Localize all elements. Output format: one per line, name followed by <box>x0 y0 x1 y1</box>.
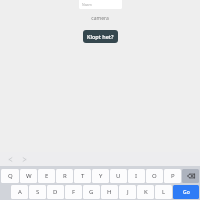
staticText: H <box>107 188 112 196</box>
button[interactable]: P <box>164 169 181 183</box>
button[interactable]: Next field <box>19 154 30 165</box>
staticText: Naam <box>82 2 92 7</box>
staticText: U <box>116 172 121 180</box>
staticText: F <box>72 188 76 196</box>
button[interactable]: Go <box>173 185 199 199</box>
staticText: Y <box>99 172 103 180</box>
staticText: camera <box>91 15 109 22</box>
staticText: R <box>63 172 67 180</box>
staticText: Q <box>8 172 13 180</box>
staticText: I <box>135 172 138 180</box>
staticText: P <box>171 172 175 180</box>
button[interactable]: H <box>101 185 118 199</box>
button[interactable]: W <box>20 169 37 183</box>
button[interactable]: S <box>29 185 46 199</box>
button[interactable]: E <box>38 169 55 183</box>
button[interactable]: T <box>74 169 91 183</box>
staticText: O <box>152 172 157 180</box>
staticText: G <box>89 188 94 196</box>
staticText: L <box>162 188 166 196</box>
button[interactable]: O <box>146 169 163 183</box>
staticText: Klopt het? <box>87 33 114 40</box>
button[interactable]: K <box>137 185 154 199</box>
button[interactable]: G <box>83 185 100 199</box>
staticText: K <box>144 188 148 196</box>
button[interactable]: I <box>128 169 145 183</box>
button[interactable]: L <box>155 185 172 199</box>
staticText: W <box>26 172 32 180</box>
button[interactable]: F <box>65 185 82 199</box>
staticText: T <box>81 172 85 180</box>
staticText: J <box>127 188 129 196</box>
button[interactable]: Naam <box>79 0 122 9</box>
button[interactable]: D <box>47 185 64 199</box>
staticText: D <box>53 188 58 196</box>
button[interactable]: J <box>119 185 136 199</box>
button[interactable]: A <box>11 185 28 199</box>
button[interactable]: R <box>56 169 73 183</box>
button[interactable]: Q <box>1 169 19 183</box>
staticText: E <box>45 172 49 180</box>
button[interactable]: Klopt het? <box>83 30 118 43</box>
staticText: S <box>36 188 40 196</box>
staticText: Go <box>183 189 190 196</box>
button[interactable]: U <box>110 169 127 183</box>
staticText: A <box>18 188 22 196</box>
button[interactable]: Previous field <box>5 154 16 165</box>
button[interactable]: Y <box>92 169 109 183</box>
button[interactable]: Backspace <box>182 169 199 183</box>
